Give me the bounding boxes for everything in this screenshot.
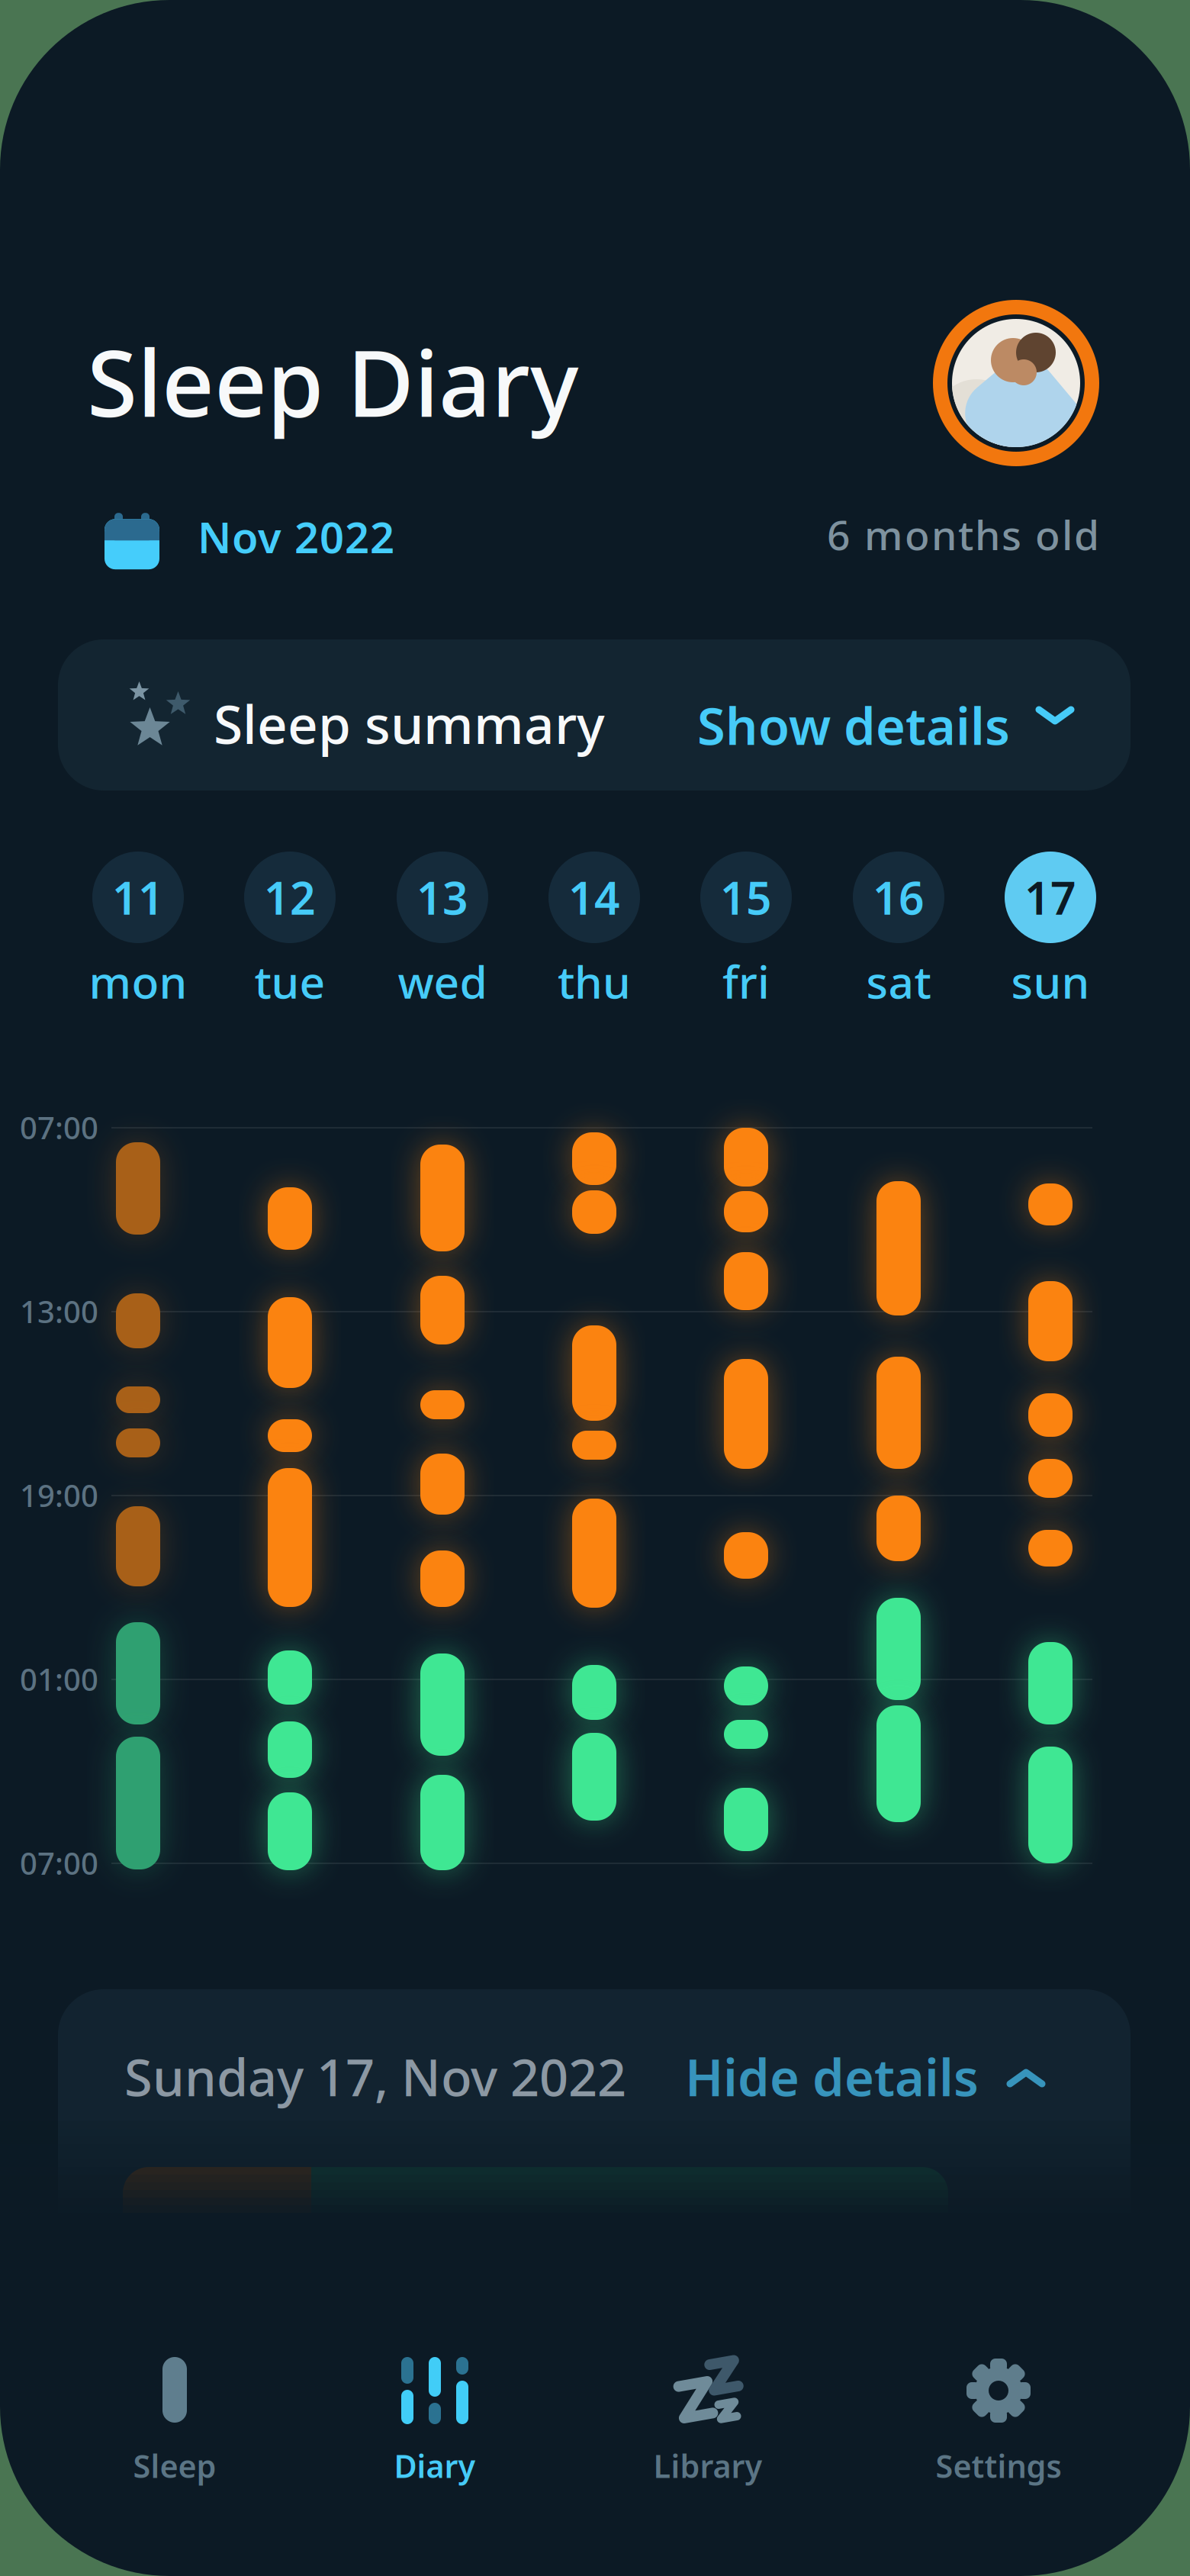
staticText: Settings [936,2445,1061,2487]
button[interactable]: Library [661,2357,755,2499]
button[interactable]: Sleep [76,2357,274,2499]
staticText: 13 [416,868,468,927]
staticText: Sleep Diary [87,320,578,442]
button[interactable]: 17 [1005,852,1096,943]
staticText: Sunday 17, Nov 2022 [124,2043,626,2110]
staticText: 15 [720,868,772,927]
staticText: 19:00 [20,1475,98,1515]
button[interactable]: Settings [899,2357,1098,2499]
button[interactable]: Diary [355,2357,514,2499]
staticText: 12 [264,868,316,927]
staticText: 07:00 [20,1843,98,1883]
button[interactable]: 12 [244,852,336,943]
staticText: Library [653,2445,762,2487]
button[interactable] [933,300,1099,466]
button[interactable]: 16 [853,852,944,943]
staticText: sat [866,952,931,1011]
button[interactable]: 15 [700,852,792,943]
button[interactable]: 14 [548,852,640,943]
staticText: wed [398,952,487,1011]
staticText: 14 [568,868,620,927]
staticText: 01:00 [20,1659,98,1699]
button[interactable]: 13 [397,852,488,943]
button[interactable]: 11 [92,852,184,943]
staticText: Sleep summary [214,688,605,759]
staticText: Show details [697,691,1010,759]
staticText: tue [254,952,325,1011]
staticText: 17 [1024,868,1076,927]
staticText: 13:00 [20,1291,98,1332]
staticText: mon [89,952,187,1011]
staticText: 11 [112,868,164,927]
staticText: Sleep [133,2445,216,2487]
staticText: Nov 2022 [198,508,394,565]
staticText: thu [558,952,631,1011]
button[interactable]: Nov 2022 [105,513,394,570]
staticText: sun [1011,952,1090,1011]
staticText: Diary [394,2445,476,2487]
button[interactable]: Sunday 17, Nov 2022 [58,1989,1130,2294]
button[interactable]: Sleep summary [58,639,1130,791]
staticText: Hide details [685,2043,979,2110]
staticText: 07:00 [20,1107,98,1148]
staticText: fri [722,952,770,1011]
staticText: 16 [873,868,925,927]
staticText: 6 months old [827,507,1099,561]
